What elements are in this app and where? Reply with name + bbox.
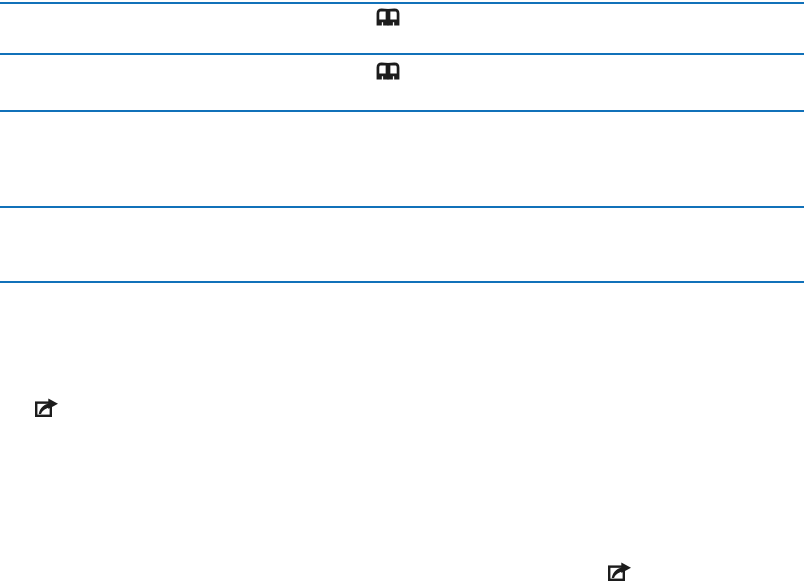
button[interactable]: Open book xyxy=(377,62,399,80)
button[interactable]: Open book xyxy=(377,8,399,26)
button[interactable]: Share xyxy=(35,398,58,417)
button[interactable]: Share xyxy=(608,562,631,581)
